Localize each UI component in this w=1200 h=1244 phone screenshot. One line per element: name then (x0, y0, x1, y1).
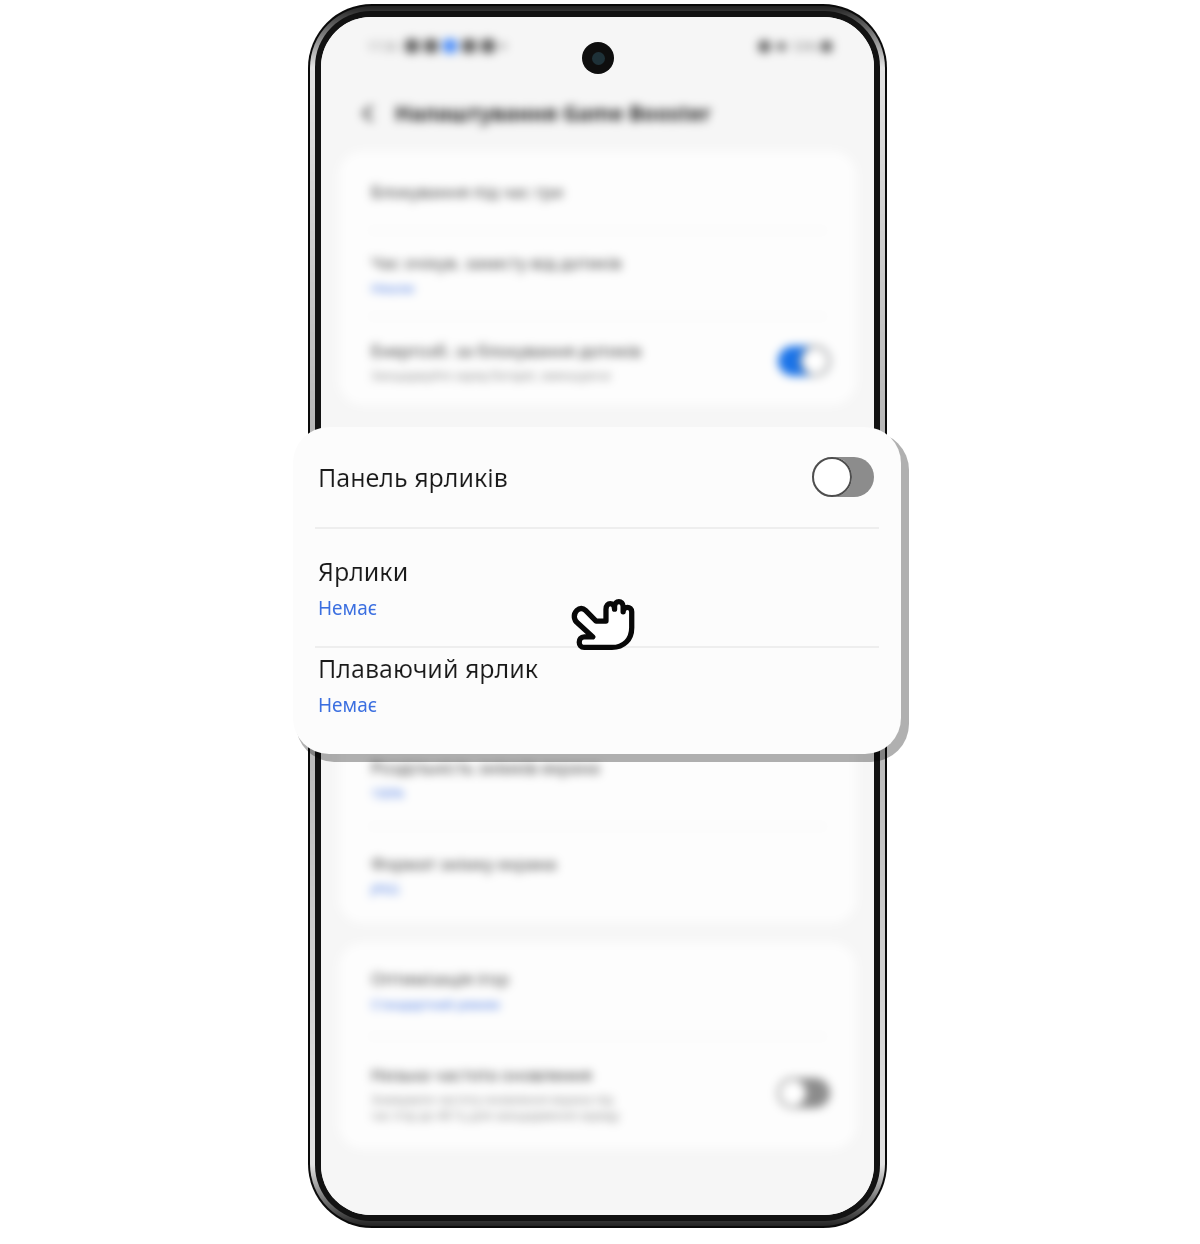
button[interactable]: Ярлики (293, 529, 901, 646)
staticText: Низька частота оновлення (371, 1063, 592, 1086)
staticText: Ярлики (318, 554, 409, 588)
staticText: Час очікув. захисту від дотиків (371, 251, 622, 274)
staticText: Блокування під час гри (371, 180, 564, 203)
staticText: Немає (318, 595, 378, 621)
button[interactable]: Панель ярликів toggle (812, 457, 874, 497)
staticText: час ігор до 48 Гц для заощадження заряду (371, 1107, 620, 1123)
staticText: Роздільність знімків екрана (371, 756, 600, 779)
staticText: Стандартний режим (371, 995, 500, 1013)
staticText: JPEG (371, 880, 400, 898)
button[interactable]: Toggle (778, 1078, 830, 1108)
staticText: Енергозб. за блокування дотиків (371, 339, 642, 362)
staticText: 53% (793, 38, 817, 54)
button[interactable]: Плаваючий ярлик (293, 648, 901, 754)
button[interactable]: Панель ярликів (293, 427, 901, 527)
staticText: Плаваючий ярлик (318, 651, 539, 685)
staticText: Ніколи (371, 279, 415, 297)
staticText: 100% (371, 784, 405, 802)
staticText: 17:36 (367, 38, 398, 54)
staticText: Оптимізація ігор (371, 967, 510, 990)
button[interactable]: Toggle (778, 346, 830, 376)
staticText: Панель ярликів (318, 460, 812, 494)
staticText: Налаштування Game Booster (395, 99, 711, 128)
staticText: Немає (318, 692, 378, 718)
staticText: Заощаджуйте заряд батареї, зменшуючи (371, 367, 611, 383)
staticText: Знижувати частоту оновлення екрана під (371, 1091, 613, 1107)
staticText: Формат знімку екрана (371, 852, 557, 875)
